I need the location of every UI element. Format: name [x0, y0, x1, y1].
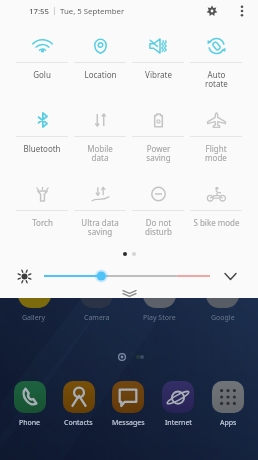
button[interactable]: More options: [232, 1, 252, 21]
staticText: Google: [211, 313, 235, 323]
button[interactable]: Collapse panel: [0, 288, 258, 298]
staticText: Mobile data: [87, 143, 113, 164]
staticText: Tue, 5 September: [60, 6, 125, 17]
staticText: Bluetooth: [23, 143, 61, 154]
staticText: S bike mode: [193, 217, 240, 228]
button[interactable]: Internet: [153, 381, 203, 428]
staticText: Play Store: [143, 313, 176, 323]
button[interactable]: Torch: [13, 178, 71, 252]
button[interactable]: Apps: [203, 381, 253, 428]
button[interactable]: Vibrate: [129, 30, 187, 104]
staticText: Torch: [32, 217, 53, 228]
staticText: Auto rotate: [205, 69, 228, 90]
button[interactable]: Golu: [13, 30, 71, 104]
staticText: Flight mode: [205, 143, 227, 164]
button[interactable]: Google: [191, 275, 254, 323]
button[interactable]: Brightness slider: [40, 266, 214, 286]
button[interactable]: S bike mode: [187, 178, 245, 252]
button[interactable]: Messages: [103, 381, 153, 428]
staticText: Ultra data saving: [81, 217, 119, 238]
button[interactable]: Mobile data: [71, 104, 129, 178]
staticText: Phone: [19, 418, 41, 428]
button[interactable]: Auto rotate: [187, 30, 245, 104]
button[interactable]: Settings: [200, 0, 224, 22]
button[interactable]: Flight mode: [187, 104, 245, 178]
staticText: Gallery: [22, 313, 46, 323]
button[interactable]: Location: [71, 30, 129, 104]
button[interactable]: Play Store: [128, 275, 191, 323]
button[interactable]: Expand quick settings: [220, 266, 240, 286]
button[interactable]: Ultra data saving: [71, 178, 129, 252]
staticText: Camera: [84, 313, 110, 323]
staticText: Internet: [165, 418, 192, 428]
staticText: Contacts: [64, 418, 93, 428]
button[interactable]: Power saving: [129, 104, 187, 178]
button[interactable]: Phone: [5, 381, 54, 428]
staticText: Vibrate: [145, 69, 172, 80]
button[interactable]: Camera: [65, 275, 128, 323]
button[interactable]: Bluetooth: [13, 104, 71, 178]
staticText: Messages: [112, 418, 145, 428]
staticText: Power saving: [146, 143, 171, 164]
button[interactable]: Auto brightness: [14, 266, 34, 286]
button[interactable]: Contacts: [54, 381, 103, 428]
button[interactable]: Gallery: [3, 275, 65, 323]
staticText: Apps: [220, 418, 237, 428]
staticText: 17:55: [29, 6, 49, 17]
staticText: Golu: [33, 69, 51, 80]
staticText: Do not disturb: [145, 217, 172, 238]
staticText: Location: [84, 69, 117, 80]
button[interactable]: Do not disturb: [129, 178, 187, 252]
